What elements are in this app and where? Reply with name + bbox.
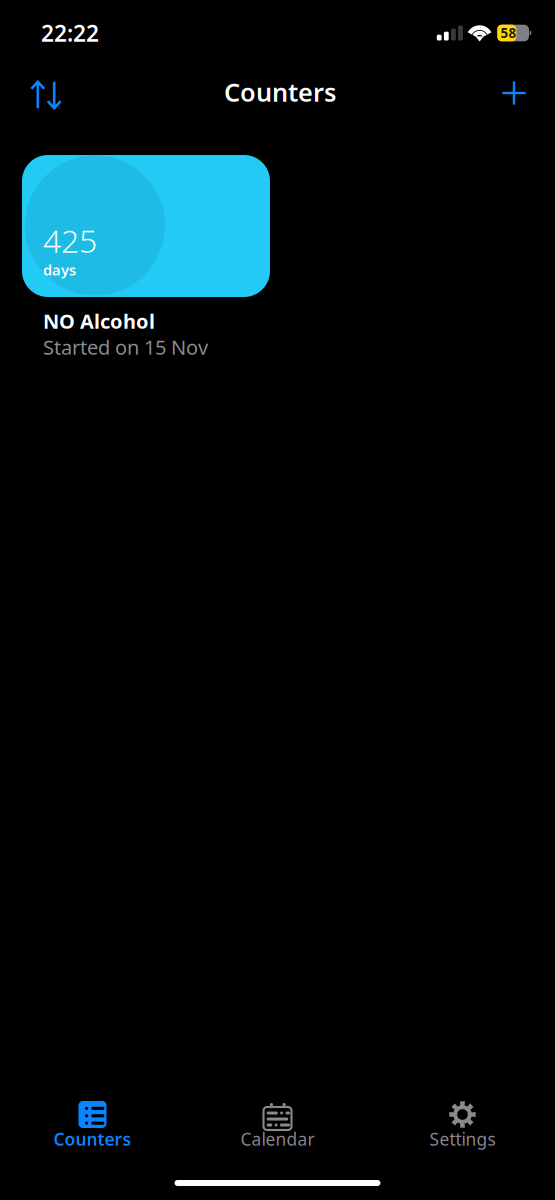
- staticText: 58: [500, 24, 516, 42]
- staticText: Settings: [429, 1127, 495, 1150]
- button[interactable]: Settings: [370, 1100, 555, 1149]
- staticText: Counters: [53, 1127, 131, 1150]
- staticText: Started on 15 Nov: [43, 334, 208, 360]
- staticText: 425: [43, 219, 97, 261]
- button[interactable]: Counters: [0, 1100, 185, 1149]
- button[interactable]: Calendar: [185, 1100, 370, 1149]
- staticText: NO Alcohol: [43, 308, 155, 334]
- button[interactable]: Add counter: [491, 72, 537, 118]
- staticText: Counters: [224, 75, 336, 109]
- staticText: 22:22: [41, 18, 99, 48]
- button[interactable]: Sort counters: [23, 72, 69, 118]
- staticText: days: [43, 260, 76, 279]
- button[interactable]: 425: [22, 155, 270, 358]
- staticText: Calendar: [240, 1127, 314, 1150]
